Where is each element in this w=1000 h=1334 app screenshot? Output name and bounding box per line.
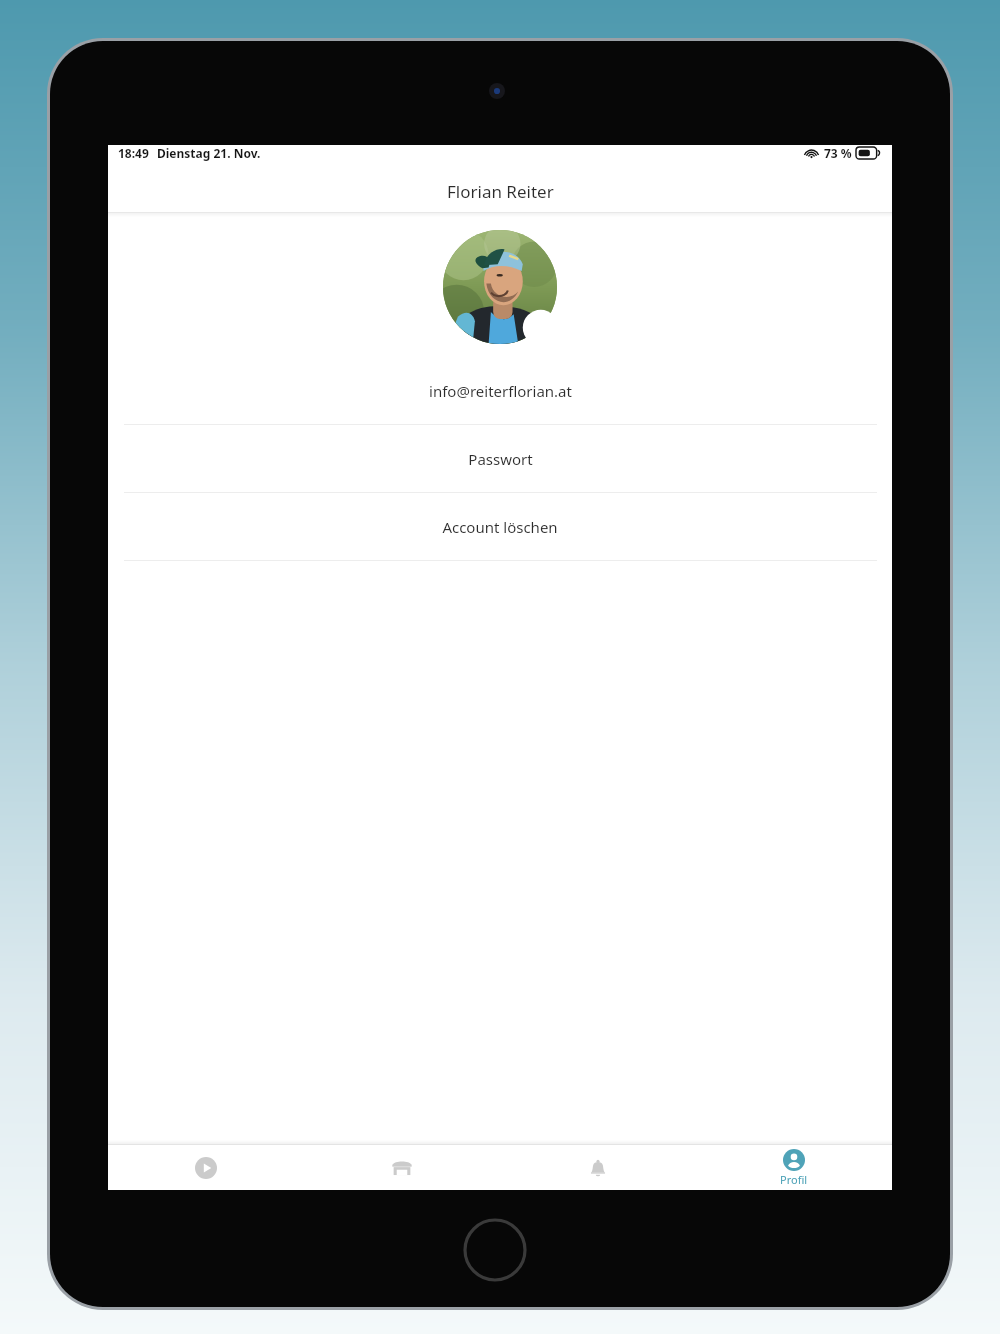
staticText: Profil — [780, 1172, 808, 1187]
button[interactable]: Profil — [696, 1145, 892, 1190]
button[interactable]: Benachrichtigungen — [500, 1145, 696, 1190]
button[interactable]: Account löschen — [108, 493, 892, 560]
button[interactable]: Play — [108, 1145, 304, 1190]
staticText: Dienstag 21. Nov. — [157, 145, 261, 161]
staticText: Account löschen — [442, 517, 558, 537]
button[interactable]: Passwort — [108, 425, 892, 492]
button[interactable]: info@reiterflorian.at — [108, 357, 892, 424]
staticText: Passwort — [468, 449, 533, 469]
staticText: 73 % — [824, 145, 852, 161]
staticText: info@reiterflorian.at — [429, 381, 572, 401]
staticText: 18:49 — [118, 145, 149, 161]
button[interactable]: Shop — [304, 1145, 500, 1190]
staticText: Florian Reiter — [447, 180, 554, 203]
